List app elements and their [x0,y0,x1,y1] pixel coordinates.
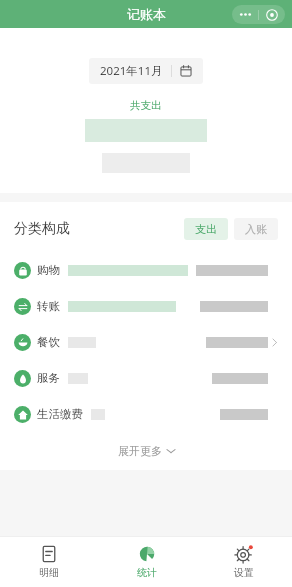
button[interactable]: 设置 [195,537,292,587]
staticText: 购物 [37,263,60,277]
staticText: 分类构成 [14,220,70,238]
staticText: 2021年11月 [100,63,163,79]
button[interactable]: 2021年11月 [89,58,203,84]
staticText: 餐饮 [37,335,60,349]
button[interactable]: 转账 [0,288,292,324]
staticText: 记账本 [127,6,166,22]
staticText: 支出 [195,222,217,236]
button[interactable]: 展开更多 [0,440,292,462]
button[interactable]: 支出 [184,218,228,240]
button[interactable]: 购物 [0,252,292,288]
staticText: 明细 [39,566,59,579]
button[interactable]: 餐饮 [0,324,292,360]
staticText: 统计 [137,566,157,579]
staticText: 展开更多 [118,444,162,458]
button[interactable]: 统计 [98,537,195,587]
button[interactable]: 生活缴费 [0,396,292,432]
button[interactable]: More options and close [232,5,285,24]
button[interactable]: 服务 [0,360,292,396]
staticText: 入账 [245,222,267,236]
staticText: 生活缴费 [37,407,83,421]
staticText: 转账 [37,299,60,313]
button[interactable]: 明细 [0,537,98,587]
staticText: 服务 [37,371,60,385]
staticText: 共支出 [130,99,162,112]
button[interactable]: 入账 [234,218,278,240]
staticText: 设置 [234,566,254,579]
